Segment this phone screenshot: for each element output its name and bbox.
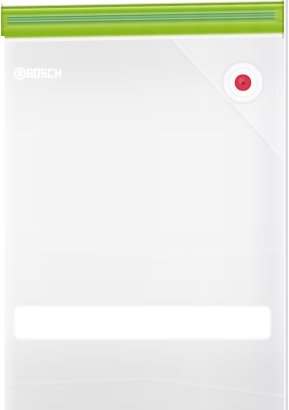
button[interactable]: Bosch vacuum sealer bag (0, 0, 289, 410)
